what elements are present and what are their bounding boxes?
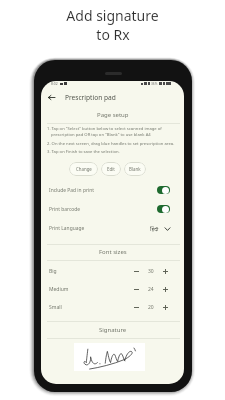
staticText: 20 [148,304,154,311]
staticText: Edit [107,166,115,172]
staticText: 1. Tap on "Select" button below to selec… [47,126,162,132]
staticText: Include Pad in print [49,187,94,194]
staticText: 24 [148,286,154,293]
button[interactable]: Increase Medium [160,284,170,294]
staticText: prescription pad OR tap on "Blank" to us… [51,132,151,138]
staticText: Print Language [49,225,85,232]
staticText: Font sizes [99,248,127,256]
staticText: 3. Tap on Finish to save the selection. [47,149,120,155]
staticText: Blank [129,166,141,172]
button[interactable]: Toggle [157,186,170,194]
staticText: Change [76,166,92,172]
staticText: Print barcode [49,206,81,213]
staticText: 8:02 [51,81,58,86]
button[interactable]: Decrease Medium [131,284,141,294]
button[interactable]: Include Pad in print [41,181,184,199]
button[interactable]: Print barcode [41,200,184,218]
button[interactable]: Increase Small [160,302,170,312]
staticText: Signature [99,326,127,334]
button[interactable]: Blank [124,162,146,176]
button[interactable]: Toggle [157,205,170,213]
button[interactable]: Decrease Big [131,266,141,276]
button[interactable]: Signature [74,343,145,371]
staticText: Medium [49,286,69,293]
staticText: Big [49,268,57,275]
button[interactable]: Change [69,162,98,176]
staticText: 36% [151,82,158,86]
button[interactable]: Print Language [41,219,184,237]
staticText: हिंदी [150,225,159,232]
staticText: Small [49,304,62,311]
staticText: Page setup [97,111,129,119]
staticText: to Rx [96,25,130,44]
staticText: Prescription pad [65,93,116,102]
staticText: Add signature [66,6,159,25]
button[interactable]: Increase Big [160,266,170,276]
button[interactable]: Edit [101,162,121,176]
button[interactable]: Decrease Small [131,302,141,312]
staticText: 2. On the next screen, drag blue handles… [47,141,175,147]
button[interactable]: Back [45,91,57,103]
staticText: 30 [148,268,154,275]
